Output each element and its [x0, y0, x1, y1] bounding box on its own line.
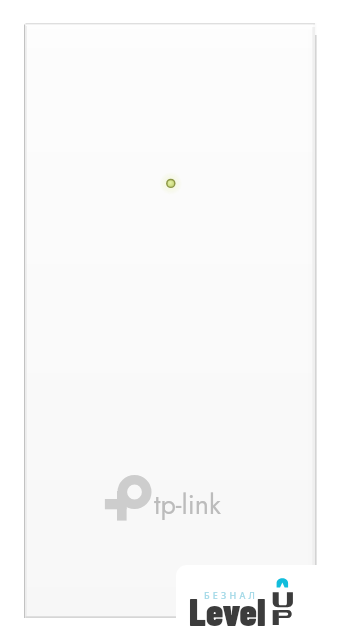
staticText: БЕЗНАЛ [204, 589, 259, 601]
button[interactable]: Level UP watermark [176, 565, 340, 640]
staticText: Level [189, 588, 266, 634]
staticText: tp-link [154, 485, 221, 524]
